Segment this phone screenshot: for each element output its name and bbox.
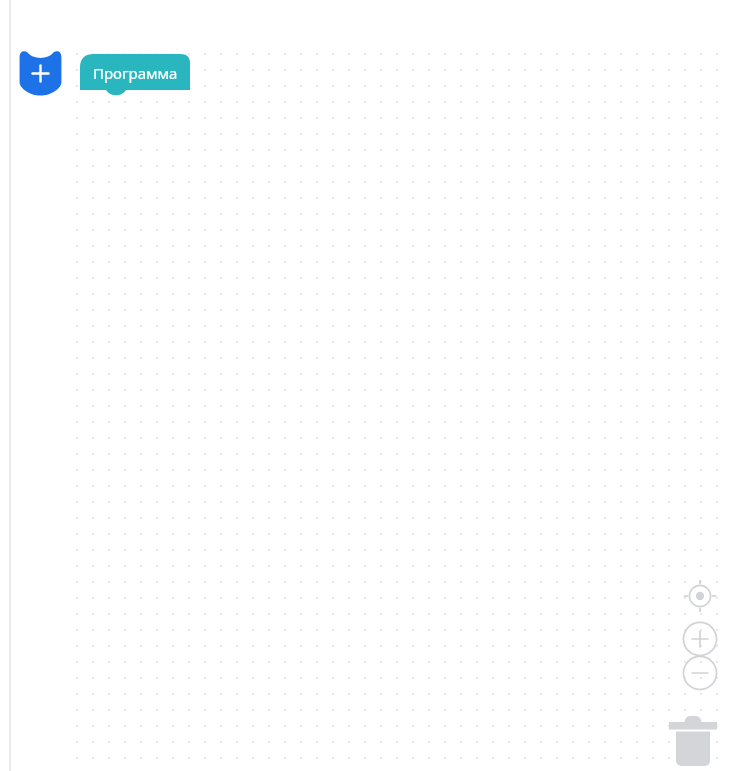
button[interactable]: Программа (80, 54, 190, 96)
button[interactable]: Center view (682, 578, 718, 614)
staticText: Программа (93, 63, 178, 83)
button[interactable]: Delete (666, 714, 720, 771)
button[interactable]: Zoom in (682, 621, 718, 657)
button[interactable]: Add block (17, 49, 64, 96)
button[interactable]: Zoom out (682, 655, 718, 691)
